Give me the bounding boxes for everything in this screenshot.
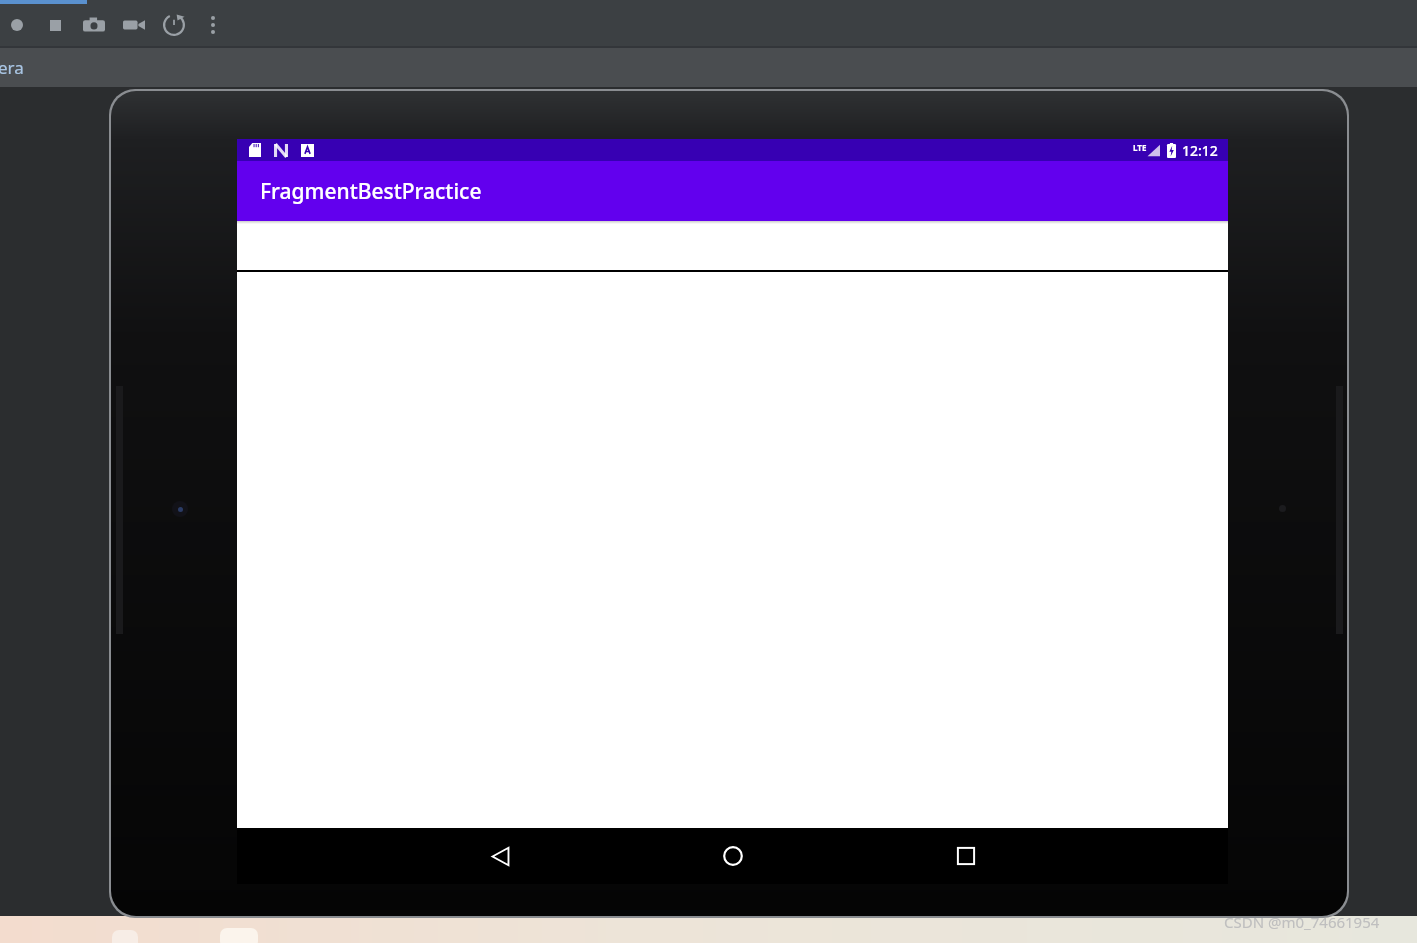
button[interactable]: Back (472, 828, 528, 884)
staticText: era (0, 56, 24, 79)
button[interactable]: Recent apps (938, 828, 994, 884)
staticText: CSDN @m0_74661954 (1224, 912, 1380, 932)
button[interactable]: Screenshot (78, 9, 110, 41)
button[interactable]: Record video (118, 9, 150, 41)
button[interactable]: Stop (40, 10, 70, 40)
button[interactable]: History (158, 9, 190, 41)
button[interactable]: Home (705, 828, 761, 884)
staticText: 12:12 (1182, 141, 1218, 160)
staticText: LTE (1133, 142, 1147, 153)
staticText: FragmentBestPractice (260, 177, 482, 206)
button[interactable]: Record (2, 10, 32, 40)
button[interactable]: More options (198, 10, 228, 40)
